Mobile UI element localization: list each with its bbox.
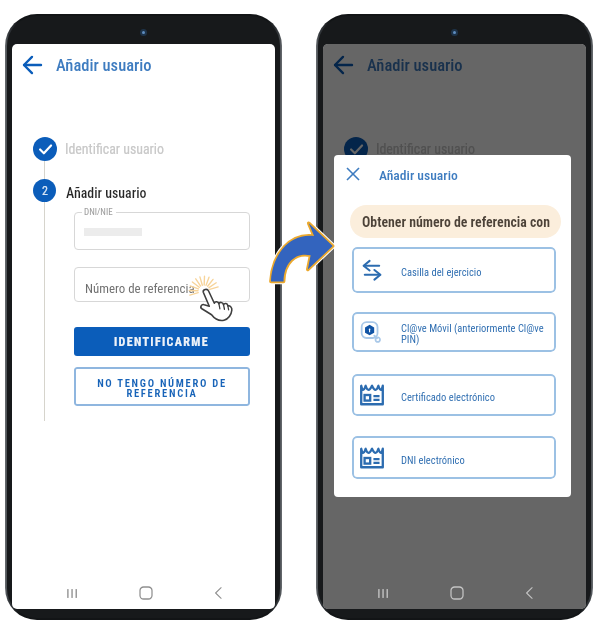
- button[interactable]: DNI electrónico: [352, 436, 556, 479]
- staticText: Añadir usuario: [367, 56, 463, 75]
- button[interactable]: IDENTIFICARME: [385, 327, 561, 356]
- button[interactable]: [385, 212, 561, 250]
- button[interactable]: Back: [205, 580, 231, 606]
- button[interactable]: Certificado electrónico: [352, 374, 556, 416]
- staticText: 2: [42, 184, 48, 198]
- button[interactable]: NO TENGO NÚMERO DE REFERENCIA: [74, 367, 250, 406]
- staticText: IDENTIFICARME: [114, 335, 210, 349]
- staticText: NO TENGO NÚMERO DE REFERENCIA: [94, 377, 230, 400]
- button[interactable]: Back: [516, 580, 542, 606]
- button[interactable]: [74, 212, 250, 250]
- staticText: Número de referencia: [85, 281, 195, 296]
- button[interactable]: Obtener número de referencia con: [350, 205, 561, 238]
- staticText: Cl@ve Móvil (anteriormente Cl@ve PIN): [401, 322, 550, 346]
- staticText: DNI/NIE: [84, 207, 113, 218]
- button[interactable]: NO TENGO NÚMERO DE REFERENCIA: [385, 367, 561, 406]
- staticText: Añadir usuario: [379, 167, 458, 183]
- button[interactable]: Casilla del ejercicio: [352, 247, 556, 293]
- staticText: Certificado electrónico: [401, 391, 495, 403]
- staticText: Añadir usuario: [56, 56, 152, 75]
- button[interactable]: Back: [327, 49, 359, 81]
- button[interactable]: Home: [133, 580, 159, 606]
- button[interactable]: Back: [16, 49, 48, 81]
- button[interactable]: Home: [444, 580, 470, 606]
- button[interactable]: Recent apps: [58, 580, 84, 606]
- staticText: Identificar usuario: [65, 141, 165, 157]
- staticText: NO TENGO NÚMERO DE REFERENCIA: [405, 377, 541, 400]
- staticText: DNI/NIE: [395, 207, 424, 218]
- button[interactable]: Recent apps: [369, 580, 395, 606]
- staticText: Obtener número de referencia con: [362, 214, 550, 230]
- staticText: DNI electrónico: [401, 454, 465, 466]
- staticText: Casilla del ejercicio: [401, 266, 482, 278]
- staticText: Identificar usuario: [376, 141, 476, 157]
- staticText: Número de referencia: [396, 281, 506, 296]
- button[interactable]: [74, 267, 250, 302]
- button[interactable]: [385, 267, 561, 302]
- button[interactable]: Close: [338, 159, 368, 189]
- button[interactable]: Cl@ve Móvil (anteriormente Cl@ve PIN): [352, 312, 556, 352]
- button[interactable]: IDENTIFICARME: [74, 327, 250, 356]
- staticText: Añadir usuario: [66, 185, 147, 201]
